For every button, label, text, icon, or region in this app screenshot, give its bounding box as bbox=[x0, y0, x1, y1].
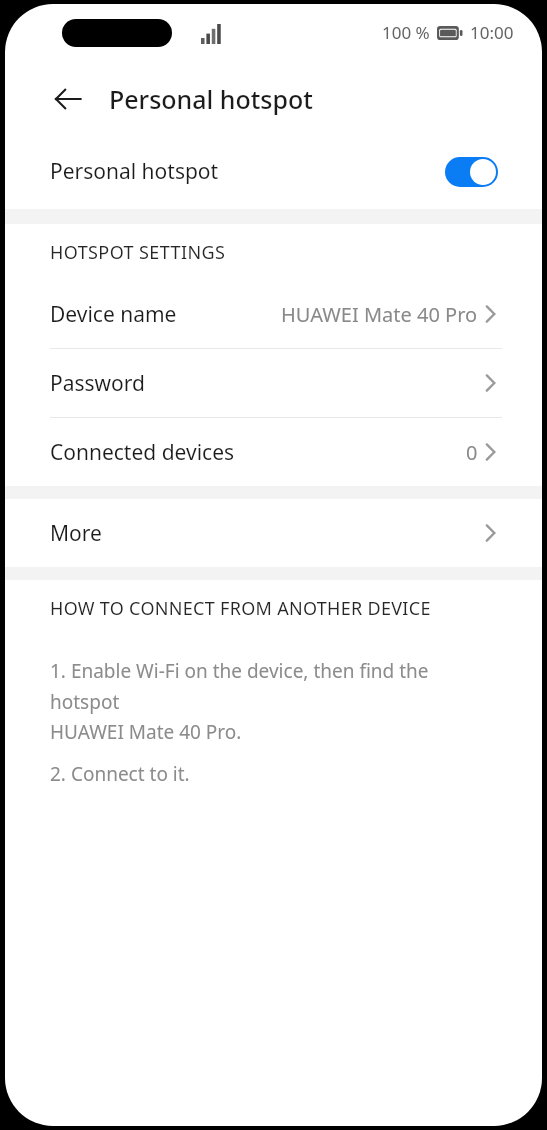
staticText: 0 bbox=[466, 439, 478, 466]
staticText: Password bbox=[50, 369, 482, 398]
staticText: HOW TO CONNECT FROM ANOTHER DEVICE bbox=[50, 596, 431, 621]
button[interactable]: More bbox=[5, 499, 542, 567]
staticText: HUAWEI Mate 40 Pro bbox=[281, 301, 478, 328]
staticText: Personal hotspot bbox=[50, 157, 445, 186]
staticText: More bbox=[50, 519, 482, 548]
button[interactable]: Personal hotspot bbox=[5, 134, 542, 209]
staticText: Personal hotspot bbox=[109, 82, 313, 116]
button[interactable]: Device name bbox=[5, 280, 542, 348]
staticText: Device name bbox=[50, 300, 281, 329]
other: Personal hotspot toggle bbox=[445, 157, 498, 187]
button[interactable]: Password bbox=[5, 349, 542, 417]
staticText: 2. Connect to it. bbox=[50, 761, 190, 787]
button[interactable]: Connected devices bbox=[5, 418, 542, 486]
staticText: 10:00 bbox=[470, 21, 514, 44]
staticText: 100 % bbox=[382, 21, 430, 44]
staticText: 1. Enable Wi-Fi on the device, then find… bbox=[50, 658, 502, 744]
staticText: HOTSPOT SETTINGS bbox=[50, 240, 226, 265]
button[interactable]: Back bbox=[45, 76, 91, 122]
staticText: Connected devices bbox=[50, 438, 466, 467]
